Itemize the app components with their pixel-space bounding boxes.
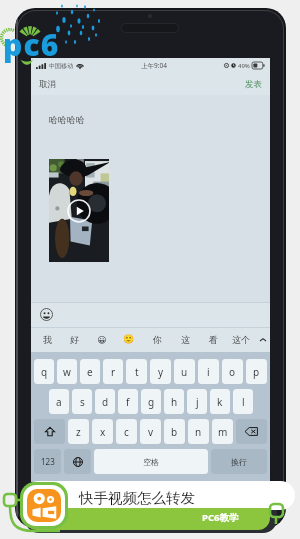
button[interactable]: Video preview bbox=[49, 159, 109, 262]
button[interactable]: 🙂 bbox=[115, 327, 143, 352]
staticText: 好 bbox=[70, 334, 79, 345]
button[interactable]: j bbox=[187, 389, 207, 414]
staticText: 你 bbox=[153, 334, 162, 345]
button[interactable]: c bbox=[116, 419, 137, 444]
staticText: a bbox=[56, 395, 62, 409]
button[interactable]: g bbox=[141, 389, 161, 414]
button[interactable]: 空格 bbox=[94, 449, 208, 474]
button[interactable]: s bbox=[72, 389, 92, 414]
button[interactable]: l bbox=[233, 389, 253, 414]
button[interactable]: Shift bbox=[34, 419, 65, 444]
staticText: 快手视频怎么转发 bbox=[79, 489, 195, 507]
staticText: h bbox=[171, 395, 178, 409]
button[interactable]: Backspace bbox=[236, 419, 267, 444]
staticText: o bbox=[229, 365, 236, 379]
staticText: z bbox=[76, 425, 81, 439]
staticText: 这个 bbox=[232, 334, 250, 345]
staticText: r bbox=[111, 365, 116, 379]
staticText: 49% bbox=[238, 62, 250, 70]
button[interactable]: y bbox=[150, 359, 171, 384]
button[interactable]: 😀 bbox=[88, 327, 115, 352]
button[interactable]: e bbox=[80, 359, 100, 384]
button[interactable]: Switch keyboard bbox=[64, 449, 91, 474]
staticText: 我 bbox=[43, 334, 52, 345]
button[interactable]: k bbox=[210, 389, 230, 414]
button[interactable]: 看 bbox=[199, 327, 227, 352]
button[interactable]: 这 bbox=[171, 327, 199, 352]
staticText: g bbox=[148, 395, 155, 409]
button[interactable]: f bbox=[118, 389, 138, 414]
staticText: f bbox=[126, 395, 130, 409]
button[interactable]: x bbox=[92, 419, 113, 444]
button[interactable]: m bbox=[212, 419, 233, 444]
staticText: 换行 bbox=[231, 457, 247, 467]
button[interactable]: r bbox=[103, 359, 123, 384]
button[interactable]: 换行 bbox=[211, 449, 267, 474]
button[interactable]: d bbox=[95, 389, 115, 414]
button[interactable]: z bbox=[68, 419, 89, 444]
staticText: b bbox=[171, 425, 178, 439]
staticText: 123 bbox=[41, 456, 55, 467]
staticText: 😀 bbox=[97, 335, 107, 345]
button[interactable]: p bbox=[246, 359, 267, 384]
button[interactable]: n bbox=[188, 419, 209, 444]
staticText: d bbox=[102, 395, 109, 409]
button[interactable]: Emoji bbox=[40, 308, 53, 321]
button[interactable]: h bbox=[164, 389, 184, 414]
button[interactable]: Expand bbox=[255, 327, 270, 352]
button[interactable]: 取消 bbox=[31, 75, 64, 94]
staticText: 空格 bbox=[143, 457, 159, 467]
staticText: j bbox=[196, 395, 199, 409]
staticText: t bbox=[135, 365, 139, 379]
staticText: v bbox=[148, 425, 154, 439]
staticText: e bbox=[87, 365, 93, 379]
staticText: y bbox=[158, 365, 164, 379]
button[interactable]: 你 bbox=[143, 327, 171, 352]
button[interactable]: Kuaishou app bbox=[27, 489, 61, 522]
button[interactable]: q bbox=[34, 359, 54, 384]
button[interactable]: 好 bbox=[61, 327, 88, 352]
button[interactable]: u bbox=[174, 359, 195, 384]
button[interactable]: v bbox=[140, 419, 161, 444]
staticText: 发表 bbox=[245, 79, 262, 90]
staticText: q bbox=[41, 365, 48, 379]
staticText: 上午9:04 bbox=[141, 61, 167, 70]
staticText: m bbox=[218, 425, 228, 439]
button[interactable]: 这个 bbox=[227, 327, 255, 352]
button[interactable]: o bbox=[222, 359, 243, 384]
staticText: 取消 bbox=[39, 79, 56, 90]
staticText: PC6教学 bbox=[202, 511, 239, 524]
staticText: x bbox=[100, 425, 106, 439]
staticText: p bbox=[253, 365, 260, 379]
button[interactable]: w bbox=[57, 359, 77, 384]
staticText: n bbox=[195, 425, 202, 439]
staticText: c bbox=[124, 425, 129, 439]
button[interactable]: 发表 bbox=[237, 75, 270, 94]
staticText: 🙂 bbox=[123, 334, 135, 345]
staticText: 哈哈哈哈 bbox=[49, 114, 85, 125]
staticText: 中国移动 bbox=[49, 62, 73, 70]
button[interactable]: 快手视频怎么转发 bbox=[0, 478, 300, 539]
button[interactable]: a bbox=[49, 389, 69, 414]
button[interactable]: 我 bbox=[34, 327, 61, 352]
staticText: 这 bbox=[181, 334, 190, 345]
staticText: u bbox=[181, 365, 188, 379]
button[interactable]: i bbox=[198, 359, 219, 384]
button[interactable]: 123 bbox=[34, 449, 61, 474]
staticText: k bbox=[217, 395, 223, 409]
staticText: i bbox=[207, 365, 210, 379]
staticText: pc6 bbox=[3, 24, 60, 65]
staticText: 看 bbox=[209, 334, 218, 345]
button[interactable]: t bbox=[126, 359, 147, 384]
staticText: l bbox=[242, 395, 245, 409]
button[interactable]: b bbox=[164, 419, 185, 444]
staticText: w bbox=[63, 365, 71, 379]
staticText: s bbox=[80, 395, 85, 409]
